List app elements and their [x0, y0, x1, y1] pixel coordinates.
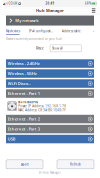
button[interactable]: USB: [6, 135, 94, 143]
staticText: Filter:: [36, 47, 44, 50]
staticText: Devices currently connected to your hub: [6, 37, 62, 41]
staticText: Ethernet - Port 2: [8, 116, 40, 122]
staticText: Show all: [52, 47, 63, 50]
staticText: BT-TV-BoxPro: [18, 100, 38, 104]
staticText: 20:49: [45, 2, 54, 5]
button[interactable]: IPv4 configuration: [29, 29, 52, 33]
button[interactable]: Ethernet - Port 1: [6, 89, 94, 98]
button[interactable]: Show all: [50, 45, 81, 52]
staticText: CO-UK: [8, 2, 17, 5]
button[interactable]: My network: [6, 15, 94, 25]
staticText: USB: [8, 136, 16, 142]
button[interactable]: Wireless - 2.4GHz: [6, 59, 94, 68]
button[interactable]: Export: [6, 160, 43, 169]
staticText: Address table: [62, 29, 81, 33]
staticText: Export: [20, 163, 28, 166]
button[interactable]: Ethernet - Port 2: [6, 115, 94, 123]
staticText: »: [93, 29, 94, 33]
staticText: Wireless - 2.4GHz: [8, 61, 40, 66]
staticText: Ethernet - Port 3: [8, 126, 40, 132]
staticText: IPv4 configuration: [29, 29, 52, 33]
button[interactable]: Wi-Fi Disco...: [6, 79, 94, 88]
staticText: Wireless - 5GHz: [8, 71, 37, 76]
staticText: Wi-Fi Disco...: [8, 81, 31, 86]
staticText: BT Hub Manager: [39, 171, 61, 175]
button[interactable]: Menu: [90, 7, 98, 14]
staticText: Ethernet - Port 1: [8, 91, 40, 96]
staticText: 68%: [85, 2, 91, 5]
button[interactable]: Refresh: [57, 160, 94, 169]
staticText: Refresh: [70, 163, 81, 166]
button[interactable]: Wireless - 5GHz: [6, 69, 94, 78]
staticText: Hub Manager: [36, 8, 64, 13]
button[interactable]: Address table: [62, 29, 81, 33]
staticText: My devices: [6, 29, 19, 33]
button[interactable]: My devices: [6, 29, 19, 35]
button[interactable]: Ethernet - Port 3: [6, 125, 94, 133]
staticText: MAC Address: C8:3A:B0:1E:4D:7F: [18, 109, 65, 112]
staticText: My network: [15, 18, 38, 23]
staticText: Private IP Address: 192.168.1.78: [18, 104, 66, 108]
